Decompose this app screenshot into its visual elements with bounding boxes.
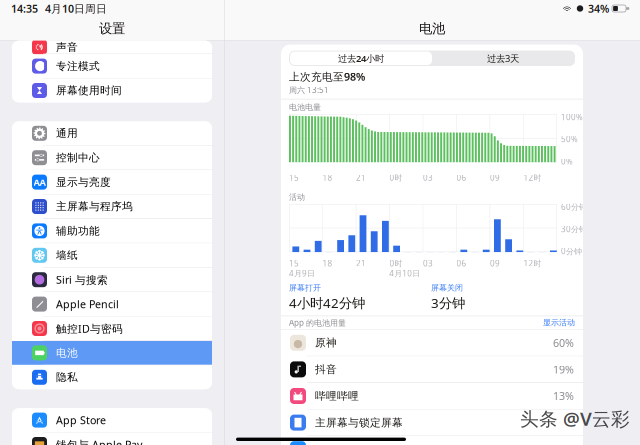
staticText: Siri 与搜索 (56, 273, 108, 287)
staticText: 显示与亮度 (56, 175, 111, 189)
staticText: 14:35 (11, 1, 38, 16)
staticText: 12时 (523, 172, 541, 183)
staticText: 15 (289, 258, 299, 269)
staticText: 19% (553, 362, 574, 376)
button[interactable]: 电池 (12, 341, 212, 365)
staticText: 4月9日 (289, 268, 315, 279)
button[interactable]: 主屏幕与锁定屏幕 (281, 410, 583, 436)
staticText: 活动 (289, 192, 305, 202)
button[interactable]: 哔哩哔哩 (281, 383, 583, 409)
button[interactable]: 显示活动 (543, 318, 575, 328)
staticText: 上次充电至98% (289, 69, 365, 84)
staticText: 专注模式 (56, 59, 100, 73)
staticText: 18 (322, 172, 332, 183)
staticText: 60分钟 (561, 201, 587, 212)
staticText: 4月10日 (389, 268, 420, 279)
staticText: 21 (356, 172, 366, 183)
staticText: 触控ID与密码 (56, 321, 123, 336)
staticText: 墙纸 (56, 249, 78, 262)
button[interactable]: 触控ID与密码 (12, 317, 212, 340)
staticText: 屏幕打开 (289, 283, 321, 293)
staticText: 电池 (56, 346, 78, 359)
staticText: 15 (289, 172, 299, 183)
staticText: 原神 (315, 336, 337, 349)
staticText: 18 (322, 258, 332, 269)
staticText: 06 (456, 172, 466, 183)
staticText: 设置 (99, 20, 125, 37)
staticText: 显示活动 (543, 318, 575, 328)
staticText: 21 (356, 258, 366, 269)
button[interactable]: Apple Pencil (12, 292, 212, 316)
staticText: Apple Pencil (56, 297, 119, 311)
staticText: 0时 (389, 172, 402, 183)
staticText: 抖音 (315, 363, 337, 376)
button[interactable]: 原神 (281, 330, 583, 356)
staticText: 电池电量 (289, 102, 321, 112)
button[interactable]: 钱包与 Apple Pay (12, 433, 212, 445)
staticText: 09 (490, 172, 500, 183)
button[interactable]: 主屏幕与程序坞 (12, 195, 212, 218)
staticText: 屏幕使用时间 (56, 84, 122, 97)
staticText: 09 (490, 258, 500, 269)
staticText: 屏幕关闭 (431, 283, 463, 293)
staticText: 4月10日周日 (45, 1, 107, 16)
staticText: 过去24小时 (338, 52, 384, 64)
button[interactable]: 声音 (12, 41, 212, 54)
staticText: 过去3天 (487, 52, 519, 64)
staticText: 50% (561, 134, 578, 144)
staticText: 钱包与 Apple Pay (56, 437, 142, 445)
staticText: 控制中心 (56, 151, 100, 164)
button[interactable]: 通用 (12, 121, 212, 145)
staticText: 100% (561, 112, 583, 122)
staticText: 30分钟 (561, 224, 587, 234)
staticText: 主屏幕与锁定屏幕 (315, 416, 403, 429)
button[interactable]: 控制中心 (12, 146, 212, 170)
staticText: 3分钟 (431, 294, 465, 312)
staticText: 头条 @V云彩 (520, 406, 630, 431)
staticText: 声音 (56, 40, 78, 54)
staticText: 12时 (523, 258, 541, 269)
staticText: 主屏幕与程序坞 (56, 200, 133, 213)
staticText: 4小时42分钟 (289, 294, 365, 312)
staticText: 0时 (389, 258, 402, 269)
staticText: 03 (423, 172, 433, 183)
button[interactable]: 专注模式 (12, 54, 212, 78)
button[interactable]: 抖音 (281, 356, 583, 382)
button[interactable]: App Store (12, 408, 212, 432)
staticText: 03 (423, 258, 433, 269)
staticText: 60% (553, 336, 574, 350)
button[interactable]: 过去24小时 (290, 52, 432, 65)
staticText: 哔哩哔哩 (315, 389, 359, 402)
staticText: 通用 (56, 127, 78, 140)
staticText: 辅助功能 (56, 224, 100, 237)
staticText: 电池 (419, 20, 445, 37)
staticText: AA (33, 176, 45, 188)
button[interactable]: 屏幕使用时间 (12, 79, 212, 102)
button[interactable]: 墙纸 (12, 243, 212, 267)
staticText: 0分钟 (561, 246, 582, 256)
staticText: 06 (456, 258, 466, 269)
staticText: 34% (588, 1, 609, 16)
staticText: 13% (553, 389, 574, 403)
button[interactable]: App Store (281, 436, 583, 445)
button[interactable]: 隐私 (12, 365, 212, 389)
staticText: 周六 13:51 (289, 85, 329, 95)
button[interactable]: 过去3天 (432, 52, 574, 65)
staticText: App Store (56, 413, 106, 427)
staticText: 隐私 (56, 371, 78, 384)
button[interactable]: 辅助功能 (12, 219, 212, 243)
button[interactable]: Siri 与搜索 (12, 268, 212, 292)
button[interactable]: AA (12, 170, 212, 194)
staticText: App 的电池用量 (289, 317, 346, 328)
staticText: 0% (561, 156, 573, 167)
